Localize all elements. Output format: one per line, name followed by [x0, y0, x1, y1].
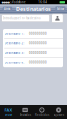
staticText: Destinatarios	[16, 5, 51, 13]
staticText: 000000000	[29, 32, 47, 35]
staticText: 000000000	[29, 61, 47, 64]
staticText: Destinatario 3:	[5, 51, 25, 55]
staticText: Vodafone	[12, 0, 26, 4]
button[interactable]: Editar	[55, 6, 65, 12]
staticText: 000000000	[29, 41, 47, 45]
staticText: Enviados	[20, 113, 31, 117]
button[interactable]: Destinatario 3:	[3, 48, 63, 58]
staticText: Destinatario 1:	[5, 32, 25, 35]
button[interactable]: Destinatario 2:	[3, 39, 63, 48]
staticText: 16:04	[38, 0, 47, 4]
staticText: ●●●●○	[1, 1, 11, 4]
button[interactable]: Destinatario 1:	[3, 29, 63, 39]
staticText: Destinatario 2:	[5, 41, 25, 45]
button[interactable]: Destinatario 4:	[3, 58, 63, 67]
button[interactable]: Enviados	[17, 105, 34, 119]
staticText: 000000000	[29, 51, 47, 55]
button[interactable]: FAX	[0, 105, 17, 119]
staticText: FAX	[4, 107, 12, 113]
staticText: Recibidos	[35, 113, 49, 117]
button[interactable]: Ajustes	[50, 105, 67, 119]
staticText: Editar	[57, 7, 64, 11]
button[interactable]: Atrás	[1, 6, 12, 12]
staticText: Introduzca el nº fax destino	[3, 16, 41, 20]
staticText: Atrás	[4, 7, 10, 11]
button[interactable]: Contactos	[52, 14, 63, 23]
staticText: Destinatario 4:	[5, 61, 25, 64]
button[interactable]: Recibidos	[33, 105, 50, 119]
staticText: Ajustes	[54, 113, 64, 117]
staticText: Enviar	[5, 113, 12, 117]
